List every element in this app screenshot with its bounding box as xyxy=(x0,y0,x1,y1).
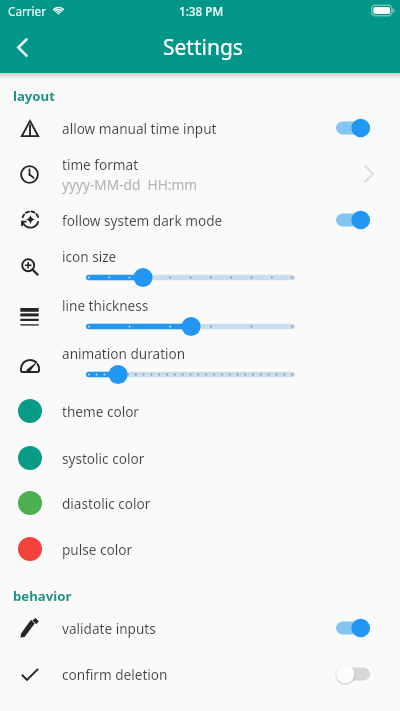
button[interactable]: Back xyxy=(0,25,44,69)
staticText: yyyy-MM-dd HH:mm xyxy=(62,175,198,194)
button[interactable]: icon size xyxy=(0,244,400,290)
button[interactable]: line thickness xyxy=(0,293,400,339)
staticText: line thickness xyxy=(62,296,149,315)
button[interactable]: confirm deletion xyxy=(0,651,400,697)
button[interactable]: validate inputs xyxy=(0,605,400,651)
staticText: behavior xyxy=(13,587,72,605)
staticText: diastolic color xyxy=(62,494,151,513)
staticText: pulse color xyxy=(62,540,133,559)
button[interactable]: systolic color xyxy=(0,435,400,481)
button[interactable]: animation duration xyxy=(0,341,400,387)
staticText: layout xyxy=(13,87,55,105)
staticText: validate inputs xyxy=(62,619,156,638)
staticText: animation duration xyxy=(62,344,186,363)
staticText: 1:38 PM xyxy=(179,3,224,19)
staticText: systolic color xyxy=(62,449,145,468)
button[interactable]: theme color xyxy=(0,388,400,434)
button[interactable]: diastolic color xyxy=(0,480,400,526)
staticText: time format xyxy=(62,155,139,174)
staticText: allow manual time input xyxy=(62,119,217,138)
staticText: theme color xyxy=(62,402,139,421)
button[interactable]: time format xyxy=(0,151,400,197)
button[interactable]: follow system dark mode xyxy=(0,197,400,243)
staticText: confirm deletion xyxy=(62,665,168,684)
staticText: icon size xyxy=(62,247,117,266)
button[interactable]: pulse color xyxy=(0,526,400,572)
staticText: Carrier xyxy=(8,3,47,19)
button[interactable]: allow manual time input xyxy=(0,105,400,151)
staticText: Settings xyxy=(163,33,243,62)
staticText: follow system dark mode xyxy=(62,211,223,230)
